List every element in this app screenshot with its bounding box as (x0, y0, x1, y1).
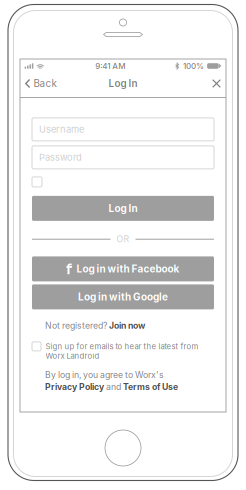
staticText: Join now (109, 320, 145, 331)
staticText: OR (116, 234, 129, 244)
staticText: Log in with Facebook (76, 263, 179, 275)
staticText: Log in with Google (78, 291, 168, 303)
staticText: and (104, 382, 123, 392)
staticText: 9:41 AM (95, 61, 125, 71)
staticText: Not registered? (45, 320, 109, 331)
button[interactable]: Log In (32, 196, 214, 221)
button[interactable]: Log in with Google (32, 284, 214, 309)
button[interactable]: Privacy Policy (45, 382, 104, 392)
button[interactable]: Terms of Use (123, 382, 178, 392)
staticText: Log In (108, 202, 137, 214)
staticText: Sign up for emails to hear the latest fr… (45, 342, 198, 361)
button[interactable]: Back (20, 73, 61, 94)
staticText: By log in, you agree to Worx's (45, 370, 164, 380)
staticText: Password (39, 152, 82, 163)
staticText: Privacy Policy (45, 382, 104, 392)
button[interactable]: Close (207, 73, 226, 94)
staticText: Username (39, 124, 84, 135)
button[interactable]: Join now (109, 320, 145, 331)
staticText: Terms of Use (123, 382, 178, 392)
button[interactable]: Log in with Facebook (32, 256, 214, 281)
staticText: 100% (183, 61, 204, 71)
staticText: Back (33, 77, 56, 89)
staticText: Log In (108, 77, 137, 89)
